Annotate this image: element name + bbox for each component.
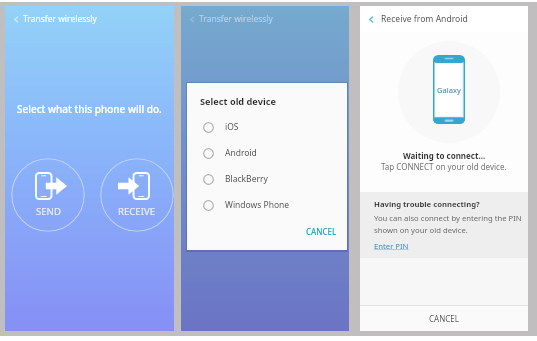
staticText: Select what this phone will do. <box>17 102 162 116</box>
staticText: Galaxy <box>437 85 461 95</box>
staticText: CANCEL <box>429 313 459 324</box>
button[interactable]: SEND <box>11 158 85 232</box>
staticText: Android <box>225 147 257 159</box>
staticText: RECEIVE <box>118 205 156 218</box>
staticText: Transfer wirelessly <box>199 13 273 25</box>
button[interactable]: Windows Phone <box>187 192 347 218</box>
other: Back <box>364 12 378 26</box>
staticText: BlackBerry <box>225 173 268 185</box>
button[interactable]: Back <box>5 6 174 32</box>
button[interactable]: CANCEL <box>360 306 528 331</box>
staticText: CANCEL <box>306 226 337 237</box>
button[interactable]: iOS <box>187 114 347 140</box>
other: Back <box>9 12 23 26</box>
button[interactable]: CANCEL <box>296 223 347 240</box>
button[interactable]: RECEIVE <box>100 158 174 232</box>
button[interactable]: BlackBerry <box>187 166 347 192</box>
staticText: Receive from Android <box>381 13 468 25</box>
staticText: iOS <box>225 121 239 133</box>
other: Back <box>185 12 199 26</box>
staticText: Tap CONNECT on your old device. <box>381 161 507 172</box>
staticText: Transfer wirelessly <box>23 13 97 25</box>
staticText: Select old device <box>200 95 276 108</box>
staticText: Windows Phone <box>225 199 290 211</box>
staticText: shown on your old device. <box>374 225 468 235</box>
staticText: You can also connect by entering the PIN <box>374 213 522 223</box>
button[interactable]: Back <box>181 6 349 32</box>
button[interactable]: Android <box>187 140 347 166</box>
button[interactable]: Back <box>360 6 528 32</box>
staticText: Enter PIN <box>374 241 409 251</box>
staticText: Waiting to connect... <box>403 150 486 161</box>
staticText: SEND <box>36 205 61 218</box>
staticText: Having trouble connecting? <box>374 199 480 209</box>
button[interactable]: Enter PIN <box>374 241 409 251</box>
